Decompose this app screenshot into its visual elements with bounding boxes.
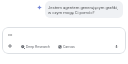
staticText: w czym mogę Ci pomóc? (48, 10, 95, 15)
button[interactable]: Canvas (57, 43, 75, 51)
button[interactable] (45, 1, 123, 18)
button[interactable]: Voice input (111, 41, 121, 51)
staticText: Canvas (63, 45, 75, 49)
button[interactable]: Gemini (35, 3, 44, 12)
button[interactable]: Add (5, 41, 15, 51)
staticText: co (8, 32, 13, 37)
button[interactable] (2, 27, 126, 54)
staticText: Deep Research (26, 45, 50, 49)
button[interactable]: Deep Research (20, 43, 50, 51)
staticText: Jestem agentem generującym grafiki, (48, 5, 118, 10)
